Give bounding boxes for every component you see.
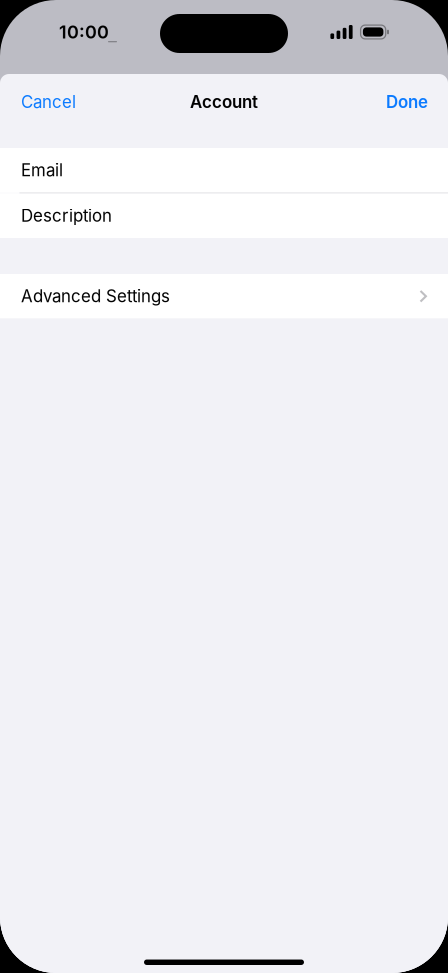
staticText: Email <box>21 160 63 180</box>
button[interactable]: Description <box>0 193 448 238</box>
staticText: Done <box>386 92 428 112</box>
staticText: 10:00 <box>59 21 109 43</box>
button[interactable]: Email <box>0 148 448 192</box>
staticText: Description <box>21 206 112 226</box>
staticText: Advanced Settings <box>21 286 170 306</box>
button[interactable]: Done <box>378 81 428 123</box>
staticText: Cancel <box>21 92 76 112</box>
staticText: Account <box>190 92 258 112</box>
button[interactable]: Cancel <box>21 81 84 123</box>
button[interactable]: Advanced Settings <box>0 274 448 318</box>
